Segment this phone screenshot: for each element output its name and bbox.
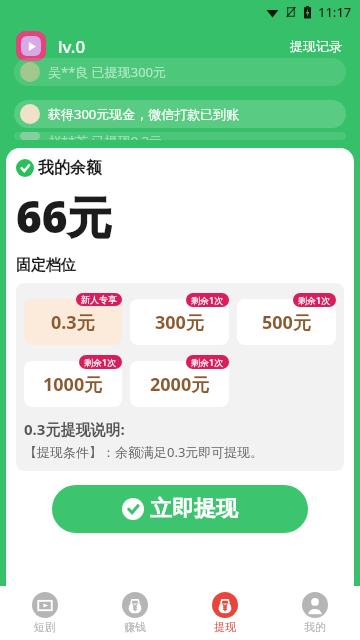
staticText: 300元 (155, 310, 204, 335)
staticText: 剩余1次 (191, 294, 224, 306)
button[interactable]: 赚钱 (90, 586, 180, 640)
staticText: 1000元 (43, 372, 103, 397)
staticText: 新人专享 (81, 294, 117, 305)
staticText: 获得300元现金，微信打款已到账 (48, 105, 240, 123)
staticText: 吴**良 已提现300元 (48, 63, 167, 81)
button[interactable]: 吴**良 已提现300元 (20, 58, 340, 86)
staticText: 固定档位 (16, 256, 76, 275)
button[interactable]: 获得300元现金，微信打款已到账 (20, 100, 340, 128)
staticText: 剩余1次 (298, 294, 331, 306)
button[interactable]: 提现 (180, 586, 270, 640)
staticText: 短剧 (34, 620, 56, 634)
staticText: 剩余1次 (84, 356, 117, 368)
button[interactable]: 500元 (237, 299, 336, 345)
staticText: 立即提现 (150, 495, 238, 523)
staticText: 66元 (16, 186, 112, 246)
staticText: lv.0 (58, 35, 86, 58)
button[interactable]: lv.0 (16, 31, 86, 61)
staticText: 剩余1次 (191, 356, 224, 368)
staticText: 提现 (214, 620, 236, 634)
staticText: 11:17 (318, 3, 352, 21)
staticText: 我的 (304, 620, 326, 634)
staticText: 【提现条件】：余额满足0.3元即可提现。 (24, 443, 264, 461)
button[interactable]: 1000元 (24, 361, 122, 407)
button[interactable]: 2000元 (130, 361, 229, 407)
staticText: 0.3元 (51, 310, 95, 335)
staticText: 赚钱 (124, 620, 146, 634)
button[interactable]: 立即提现 (52, 485, 308, 533)
button[interactable]: 赵**芳 已提现0.3元 (20, 132, 340, 140)
staticText: 赵**芳 已提现0.3元 (48, 132, 163, 140)
staticText: 0.3元提现说明: (24, 419, 125, 439)
button[interactable]: 短剧 (0, 586, 90, 640)
button[interactable]: 0.3元 (24, 299, 122, 345)
staticText: 我的余额 (38, 158, 102, 178)
staticText: 提现记录 (290, 38, 342, 54)
staticText: 500元 (262, 310, 311, 335)
button[interactable]: 我的 (270, 586, 360, 640)
button[interactable]: 300元 (130, 299, 229, 345)
staticText: 2000元 (150, 372, 210, 397)
button[interactable]: 提现记录 (286, 34, 346, 58)
